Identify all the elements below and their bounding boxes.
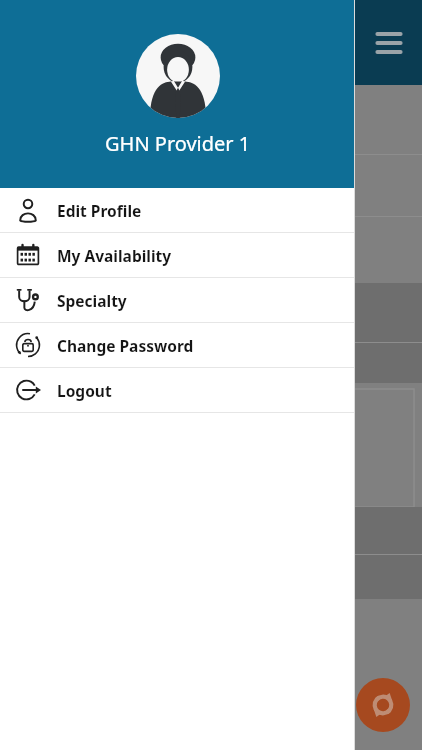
staticText: Change Password bbox=[57, 335, 194, 356]
button[interactable]: Refresh bbox=[356, 678, 410, 732]
button[interactable]: More options bbox=[44, 407, 60, 441]
staticText: Logout bbox=[57, 380, 112, 401]
staticText: My Availability bbox=[57, 245, 172, 266]
button[interactable]: Logout bbox=[0, 368, 355, 413]
staticText: Specialty bbox=[57, 290, 127, 311]
staticText: GHN Provider 1 bbox=[105, 130, 251, 157]
button[interactable]: My Availability bbox=[0, 233, 355, 278]
staticText: Edit Profile bbox=[57, 200, 142, 221]
button[interactable]: Open navigation menu bbox=[372, 28, 406, 58]
button[interactable]: Specialty bbox=[0, 278, 355, 323]
button[interactable]: Edit Profile bbox=[0, 188, 355, 233]
button[interactable]: Change Password bbox=[0, 323, 355, 368]
button[interactable]: Profile photo bbox=[136, 34, 220, 118]
